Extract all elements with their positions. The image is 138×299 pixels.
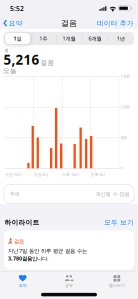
button[interactable]: 데이터 추가 [97, 19, 134, 27]
button[interactable]: 1일 [13, 35, 21, 42]
button[interactable]: 추세 [4, 184, 134, 203]
button[interactable]: 둘러보기 [109, 275, 125, 288]
staticText: 둘러보기 [109, 283, 125, 288]
button[interactable]: 공유 [64, 275, 74, 288]
button[interactable]: 요약 [19, 275, 27, 288]
staticText: 1일 [13, 35, 21, 42]
staticText: 6개월 [88, 35, 101, 42]
staticText: 오후 12시 [62, 172, 79, 177]
button[interactable]: 6개월 [88, 35, 101, 42]
staticText: 공유 [65, 283, 73, 288]
staticText: 계산할 수 없음 [95, 191, 129, 197]
button[interactable]: 1주 [39, 35, 47, 42]
staticText: 500 [120, 135, 126, 140]
staticText: 지난 7일 동안 하루 평균 걸음 수는 [8, 247, 87, 254]
button[interactable]: 걸음 [4, 230, 134, 270]
staticText: 걸음 [40, 58, 54, 67]
button[interactable]: 1년 [117, 35, 125, 42]
staticText: 오후 6시 [90, 172, 105, 177]
staticText: 모두 보기 [104, 218, 134, 227]
staticText: 5,216 [3, 51, 39, 68]
staticText: 요약 [19, 283, 27, 288]
staticText: 요약 [9, 19, 23, 27]
staticText: 추세 [9, 191, 19, 197]
staticText: 5:52 [10, 4, 24, 13]
staticText: 걸음 [61, 18, 77, 28]
staticText: 1주 [39, 35, 47, 42]
staticText: 하이라이트 [4, 218, 39, 227]
staticText: 1개월 [62, 35, 75, 42]
staticText: 1년 [117, 35, 125, 42]
staticText: 오늘 [3, 67, 17, 75]
staticText: 오전 12시 [5, 172, 22, 177]
staticText: 1,000 [120, 104, 129, 109]
staticText: 1,500 [120, 73, 129, 79]
button[interactable]: 모두 보기 [4, 218, 134, 227]
button[interactable]: 요약 [3, 19, 23, 27]
staticText: 오전 6시 [33, 172, 48, 177]
staticText: 3,780걸음 [8, 255, 32, 262]
staticText: 걸음 [14, 238, 24, 245]
staticText: 0 [120, 166, 122, 171]
staticText: 입니다. [32, 255, 48, 262]
staticText: 총 [4, 48, 8, 53]
button[interactable]: 1개월 [62, 35, 75, 42]
staticText: 데이터 추가 [97, 19, 134, 27]
